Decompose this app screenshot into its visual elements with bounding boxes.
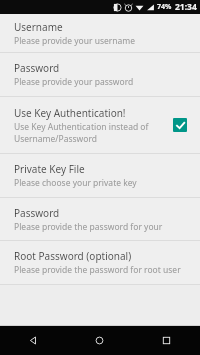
staticText: Please provide your password (14, 76, 134, 88)
button[interactable]: Password (0, 198, 200, 240)
button[interactable]: Username (0, 14, 200, 52)
button[interactable]: Private Key File (0, 154, 200, 197)
staticText: Please provide your username (14, 35, 136, 47)
button[interactable]: Password (0, 53, 200, 96)
button[interactable]: Home (66, 326, 133, 355)
staticText: Please provide the password for root use… (14, 264, 181, 276)
staticText: Username (14, 20, 63, 34)
staticText: Password (14, 206, 60, 220)
staticText: 74% (157, 2, 172, 12)
button[interactable]: Use Key Authentication! (0, 97, 200, 153)
staticText: Username/Password (14, 133, 97, 145)
button[interactable]: Back (0, 326, 66, 355)
button[interactable]: Recent apps (133, 326, 200, 355)
staticText: Root Password (optional) (14, 249, 132, 263)
staticText: Please choose your private key (14, 177, 137, 189)
staticText: Password (14, 61, 60, 75)
other: Use Key Authentication toggle (173, 118, 187, 132)
button[interactable]: Root Password (optional) (0, 241, 200, 284)
staticText: 21:34 (175, 1, 197, 13)
staticText: Use Key Authentication instead of (14, 121, 149, 133)
staticText: Private Key File (14, 162, 85, 176)
staticText: Please provide the password for your pri… (14, 221, 188, 233)
staticText: Use Key Authentication! (14, 106, 126, 120)
